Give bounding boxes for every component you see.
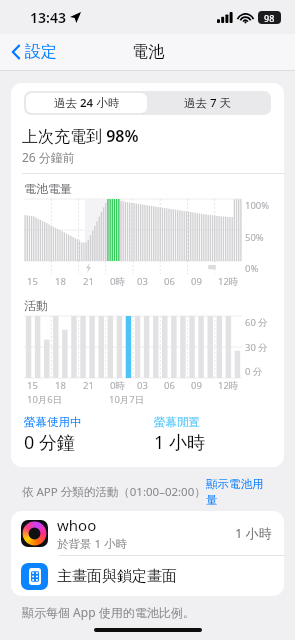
staticText: 依 APP 分類的活動（01:00–02:00） xyxy=(22,484,206,500)
staticText: 21 xyxy=(83,379,94,392)
staticText: 主畫面與鎖定畫面 xyxy=(57,567,177,586)
staticText: 12時 xyxy=(218,275,239,288)
staticText: 15 xyxy=(27,275,38,288)
staticText: 21 xyxy=(83,275,94,288)
staticText: 03 xyxy=(137,379,148,392)
staticText: 螢幕使用中 xyxy=(24,415,82,429)
staticText: 12時 xyxy=(218,379,239,392)
staticText: 0時 xyxy=(110,275,125,288)
staticText: 上次充電到 98% xyxy=(22,125,139,147)
staticText: 過去 24 小時 xyxy=(54,95,120,111)
button[interactable]: whoo xyxy=(11,511,284,555)
staticText: 26 分鐘前 xyxy=(22,149,75,165)
staticText: 1 小時 xyxy=(235,524,272,542)
staticText: 100% xyxy=(245,199,270,212)
staticText: 電池電量 xyxy=(24,181,72,196)
staticText: 13:43 xyxy=(30,8,66,27)
staticText: 1 小時 xyxy=(154,430,205,455)
button[interactable]: 過去 7 天 xyxy=(147,93,269,113)
staticText: 活動 xyxy=(24,298,48,313)
staticText: 0時 xyxy=(110,379,125,392)
staticText: 10月7日 xyxy=(109,393,145,406)
staticText: 50% xyxy=(245,231,264,244)
staticText: 設定 xyxy=(25,42,57,62)
staticText: 過去 7 天 xyxy=(184,95,232,111)
staticText: 0 分 xyxy=(245,365,263,378)
staticText: 18 xyxy=(55,275,66,288)
staticText: 15 xyxy=(27,379,38,392)
staticText: 顯示每個 App 使用的電池比例。 xyxy=(22,604,195,620)
button[interactable]: 主畫面與鎖定畫面 xyxy=(11,556,284,596)
staticText: 顯示電池用量 xyxy=(206,477,273,507)
staticText: 06 xyxy=(164,379,175,392)
staticText: 60 分 xyxy=(245,316,268,329)
staticText: 10月6日 xyxy=(27,393,63,406)
staticText: 18 xyxy=(55,379,66,392)
staticText: 螢幕閒置 xyxy=(154,415,200,429)
staticText: 98 xyxy=(264,12,275,24)
staticText: 06 xyxy=(164,275,175,288)
button[interactable]: 過去 24 小時 xyxy=(26,93,147,113)
staticText: 09 xyxy=(191,379,202,392)
staticText: 09 xyxy=(191,275,202,288)
staticText: whoo xyxy=(57,515,97,535)
staticText: 0 分鐘 xyxy=(24,430,75,455)
staticText: 0% xyxy=(245,262,259,275)
button[interactable]: 設定 xyxy=(8,38,61,66)
staticText: 03 xyxy=(137,275,148,288)
staticText: 於背景 1 小時 xyxy=(57,536,128,552)
staticText: 電池 xyxy=(132,42,164,62)
staticText: 30 分 xyxy=(245,341,268,354)
button[interactable]: 顯示電池用量 xyxy=(206,477,273,507)
